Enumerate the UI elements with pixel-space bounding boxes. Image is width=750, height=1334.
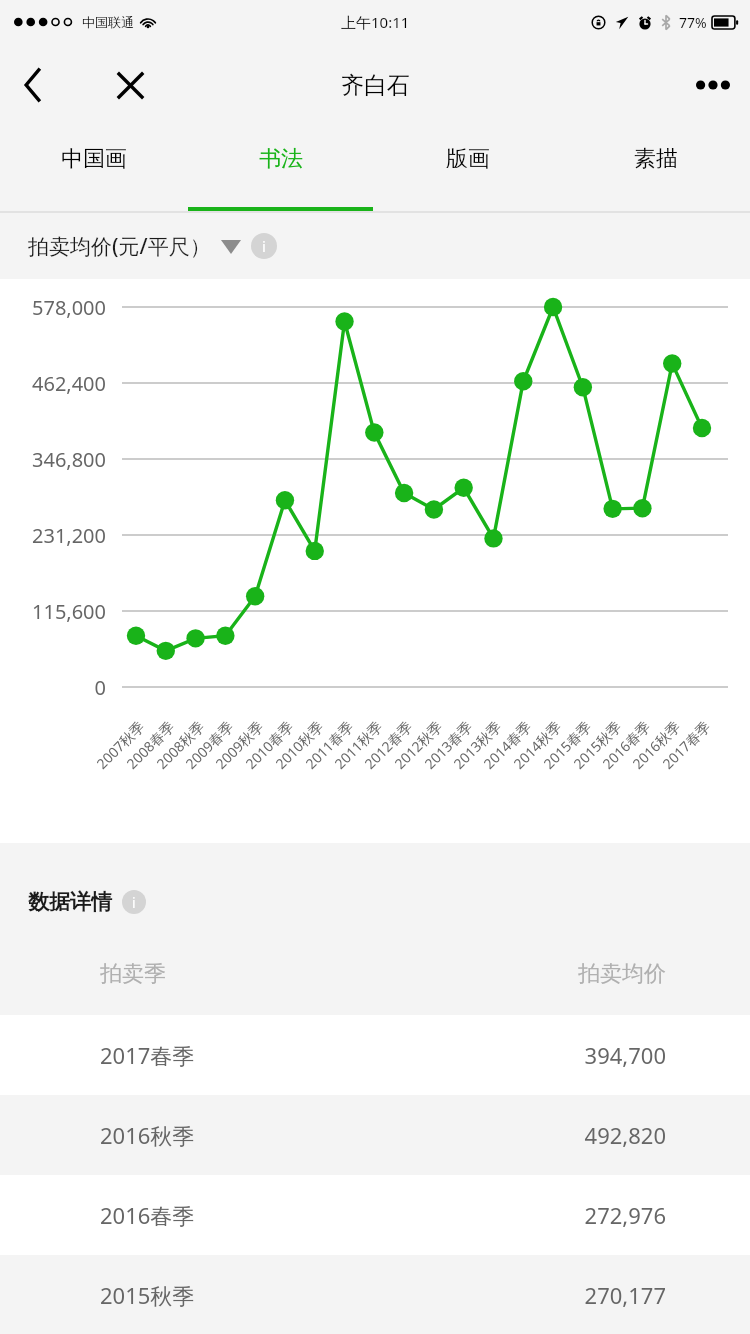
- staticText: 2008春季: [122, 716, 179, 773]
- staticText: i: [132, 893, 136, 912]
- button[interactable]: More options: [684, 56, 742, 114]
- staticText: 2010春季: [241, 716, 298, 773]
- staticText: 270,177: [375, 1280, 666, 1310]
- staticText: i: [262, 236, 266, 256]
- staticText: 462,400: [0, 370, 106, 397]
- staticText: 2017春季: [658, 716, 715, 773]
- staticText: 578,000: [0, 294, 106, 321]
- staticText: 上午10:11: [341, 12, 410, 32]
- staticText: 中国联通: [82, 14, 134, 30]
- staticText: 231,200: [0, 522, 106, 549]
- staticText: 2014秋季: [509, 716, 566, 773]
- staticText: 版画: [446, 145, 490, 173]
- staticText: 346,800: [0, 446, 106, 473]
- staticText: 2014春季: [479, 716, 536, 773]
- staticText: 394,700: [375, 1040, 666, 1070]
- button[interactable]: Back: [6, 58, 60, 112]
- button[interactable]: 中国画: [0, 126, 187, 211]
- staticText: 中国画: [61, 145, 127, 173]
- staticText: 492,820: [375, 1120, 666, 1150]
- button[interactable]: 素描: [562, 126, 750, 211]
- button[interactable]: 版画: [374, 126, 562, 211]
- staticText: 272,976: [375, 1200, 666, 1230]
- staticText: 2016秋季: [628, 716, 685, 773]
- button[interactable]: Close: [103, 58, 157, 112]
- button[interactable]: 2016春季: [0, 1175, 750, 1255]
- staticText: 2015春季: [539, 716, 596, 773]
- staticText: 2012秋季: [390, 716, 447, 773]
- staticText: 2009春季: [181, 716, 238, 773]
- staticText: 2015秋季: [100, 1280, 375, 1310]
- staticText: 2010秋季: [271, 716, 328, 773]
- staticText: 2017春季: [100, 1040, 375, 1070]
- staticText: 拍卖均价: [375, 960, 666, 988]
- staticText: 拍卖均价(元/平尺）: [28, 232, 211, 261]
- button[interactable]: 2017春季: [0, 1015, 750, 1095]
- staticText: 书法: [259, 145, 303, 173]
- staticText: 2008秋季: [152, 716, 209, 773]
- staticText: 2011秋季: [330, 716, 387, 773]
- staticText: 2015秋季: [569, 716, 626, 773]
- staticText: 77%: [679, 13, 707, 32]
- button[interactable]: Information: [251, 233, 277, 259]
- staticText: 素描: [634, 145, 678, 173]
- staticText: 2007秋季: [92, 716, 149, 773]
- button[interactable]: 2015秋季: [0, 1255, 750, 1334]
- button[interactable]: Information: [122, 890, 146, 914]
- staticText: 2012春季: [360, 716, 417, 773]
- staticText: 2013秋季: [449, 716, 506, 773]
- staticText: 2013春季: [420, 716, 477, 773]
- button[interactable]: 拍卖均价(元/平尺）: [28, 232, 241, 261]
- staticText: 115,600: [0, 598, 106, 625]
- staticText: 拍卖季: [100, 960, 375, 988]
- button[interactable]: 书法: [187, 126, 374, 211]
- staticText: 2009秋季: [211, 716, 268, 773]
- staticText: 2016春季: [100, 1200, 375, 1230]
- staticText: 2011春季: [301, 716, 358, 773]
- button[interactable]: 2016秋季: [0, 1095, 750, 1175]
- staticText: 0: [0, 674, 106, 701]
- staticText: 2016秋季: [100, 1120, 375, 1150]
- staticText: 2016春季: [598, 716, 655, 773]
- staticText: 齐白石: [341, 71, 410, 100]
- staticText: 数据详情: [28, 889, 112, 915]
